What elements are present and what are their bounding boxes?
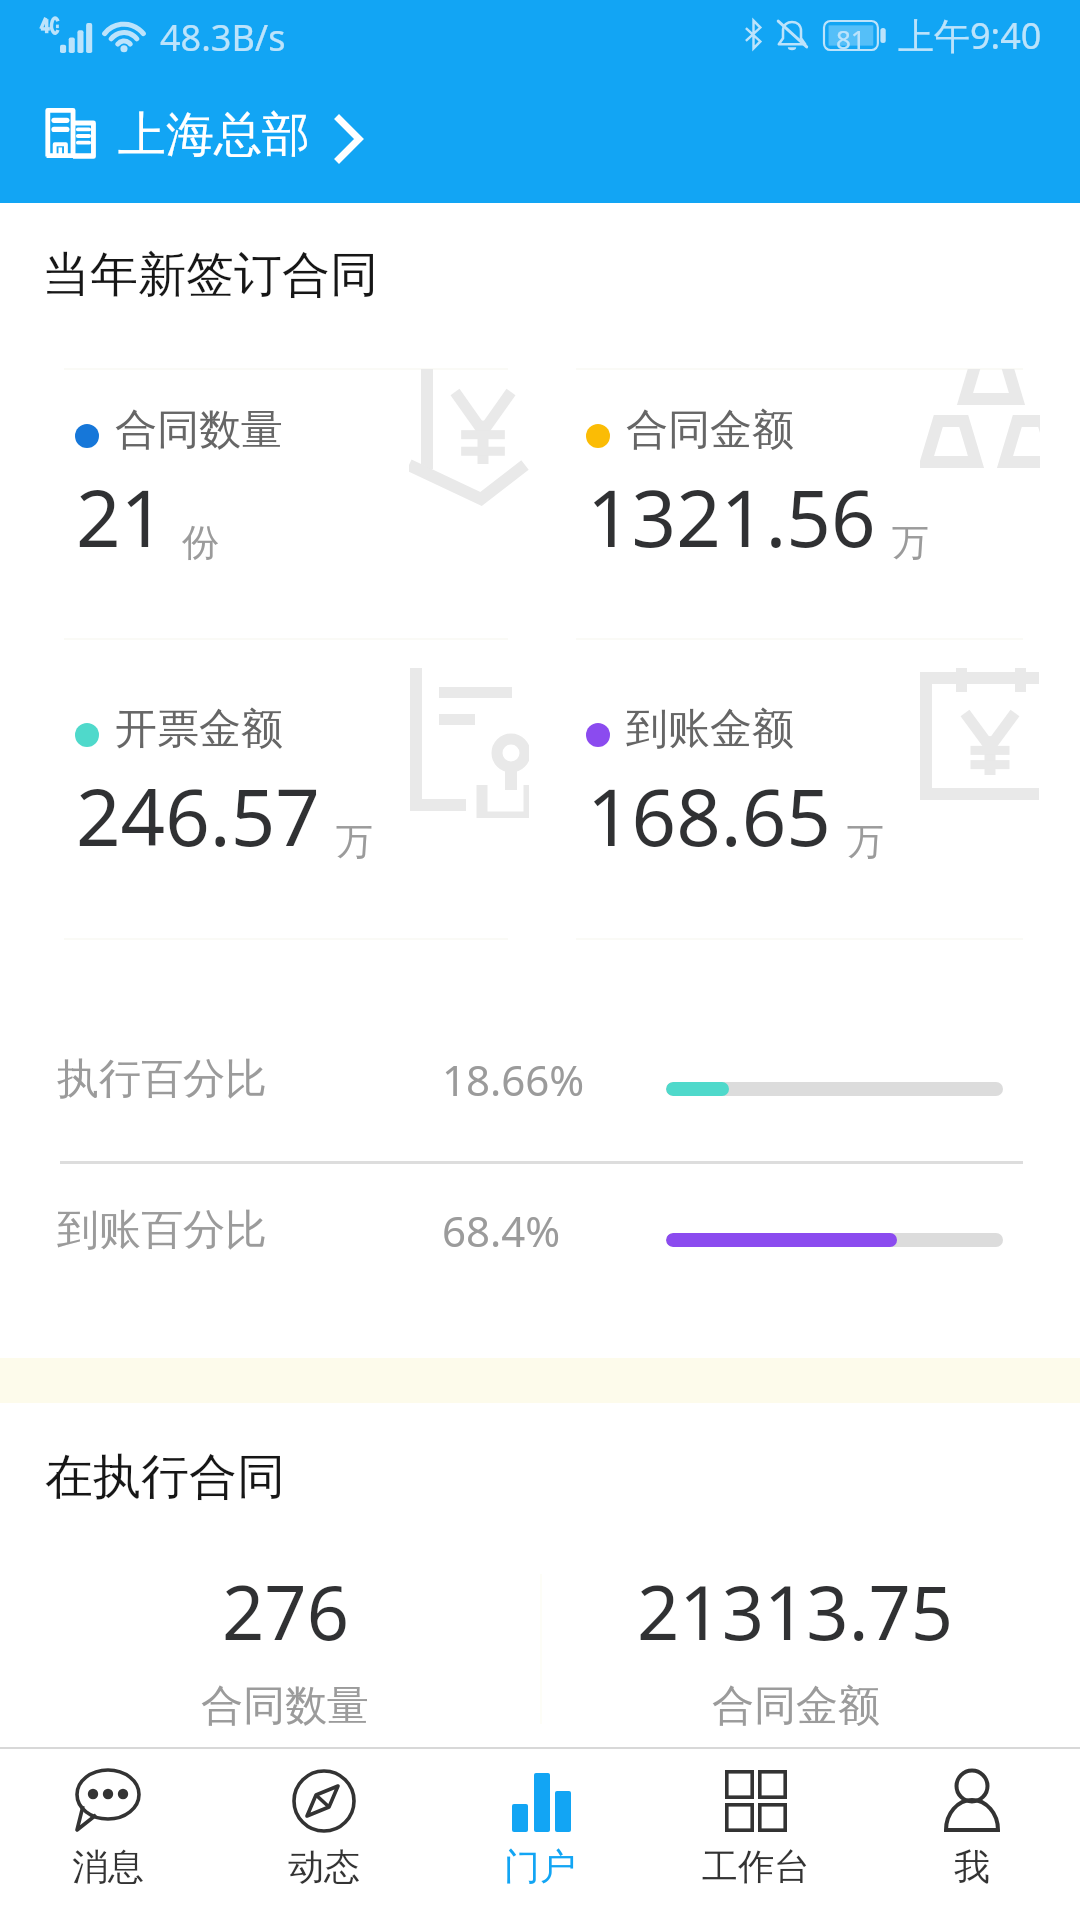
button[interactable]: 合同金额 (511, 339, 1051, 638)
staticText: 万 (336, 818, 373, 865)
button[interactable]: 到账百分比 (0, 1151, 1080, 1309)
button[interactable]: 276 (30, 1561, 540, 1733)
staticText: 万 (892, 519, 929, 566)
staticText: 168.65 (587, 763, 831, 869)
other: 切换组织 (336, 115, 362, 163)
staticText: 68.4% (442, 1202, 561, 1259)
staticText: 1321.56 (587, 464, 876, 570)
staticText: 上海总部 (118, 105, 310, 165)
button[interactable]: 动态 (216, 1749, 432, 1920)
staticText: 动态 (288, 1844, 360, 1889)
staticText: 执行百分比 (57, 1053, 267, 1106)
button[interactable]: 21313.75 (541, 1561, 1050, 1733)
button[interactable]: 执行百分比 (0, 1000, 1080, 1158)
staticText: 当年新签订合同 (42, 245, 378, 305)
button[interactable]: 我 (864, 1749, 1080, 1920)
staticText: 81 (836, 21, 866, 56)
staticText: 份 (182, 519, 219, 566)
button[interactable]: 门户 (432, 1749, 648, 1920)
staticText: 工作台 (702, 1844, 810, 1889)
button[interactable]: 合同数量 (0, 339, 540, 638)
staticText: 21313.75 (637, 1561, 954, 1662)
staticText: 合同数量 (201, 1680, 369, 1733)
staticText: 消息 (72, 1844, 144, 1889)
button[interactable]: 工作台 (648, 1749, 864, 1920)
staticText: 开票金额 (115, 703, 283, 756)
staticText: 上午9:40 (898, 11, 1042, 60)
button[interactable]: 消息 (0, 1749, 216, 1920)
staticText: 到账百分比 (57, 1204, 267, 1257)
button[interactable]: 上海总部 (0, 72, 1080, 203)
staticText: 万 (847, 818, 884, 865)
button[interactable]: 到账金额 (511, 638, 1051, 937)
staticText: 18.66% (442, 1051, 585, 1108)
staticText: 在执行合同 (45, 1447, 285, 1507)
staticText: 48.3B/s (160, 13, 286, 62)
staticText: 合同金额 (626, 404, 794, 457)
staticText: 到账金额 (626, 703, 794, 756)
staticText: 我 (954, 1844, 990, 1889)
staticText: 246.57 (76, 763, 320, 869)
staticText: 合同金额 (712, 1680, 880, 1733)
staticText: 合同数量 (115, 404, 283, 457)
staticText: 276 (222, 1561, 349, 1662)
staticText: 21 (76, 464, 166, 570)
button[interactable]: 开票金额 (0, 638, 540, 937)
staticText: 门户 (504, 1844, 576, 1889)
